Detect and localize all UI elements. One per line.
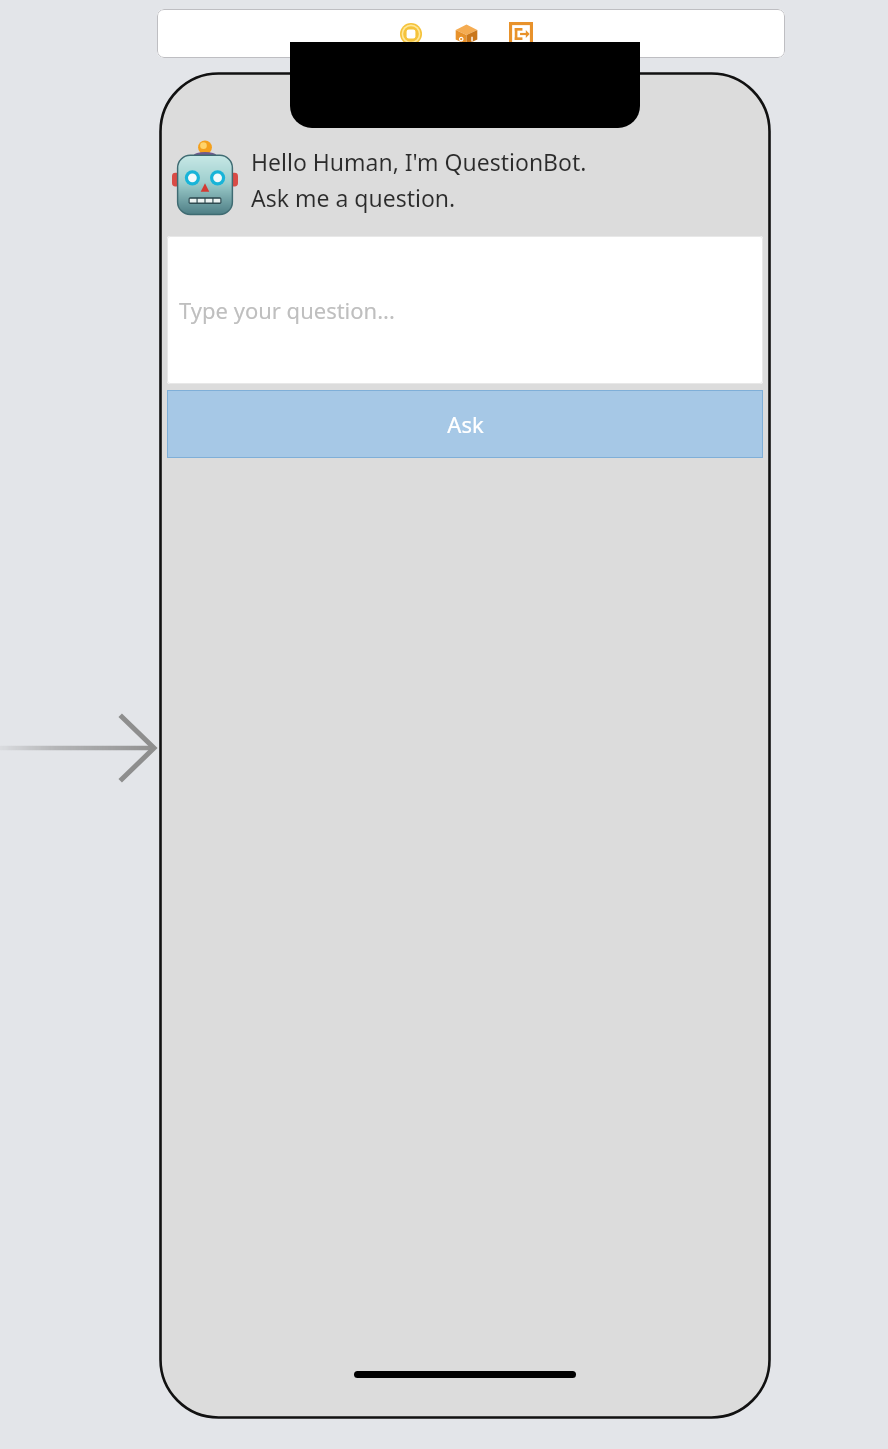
staticText: Hello Human, I'm QuestionBot.: [251, 146, 587, 177]
staticText: Ask me a question.: [251, 182, 456, 213]
button[interactable]: Ask: [167, 390, 763, 458]
staticText: Type your question...: [179, 295, 395, 325]
staticText: Ask: [447, 409, 484, 439]
button[interactable]: Build: [449, 17, 483, 51]
button[interactable]: Logout: [504, 17, 538, 51]
button[interactable]: Stop: [394, 17, 428, 51]
button[interactable]: Type your question...: [167, 236, 763, 384]
